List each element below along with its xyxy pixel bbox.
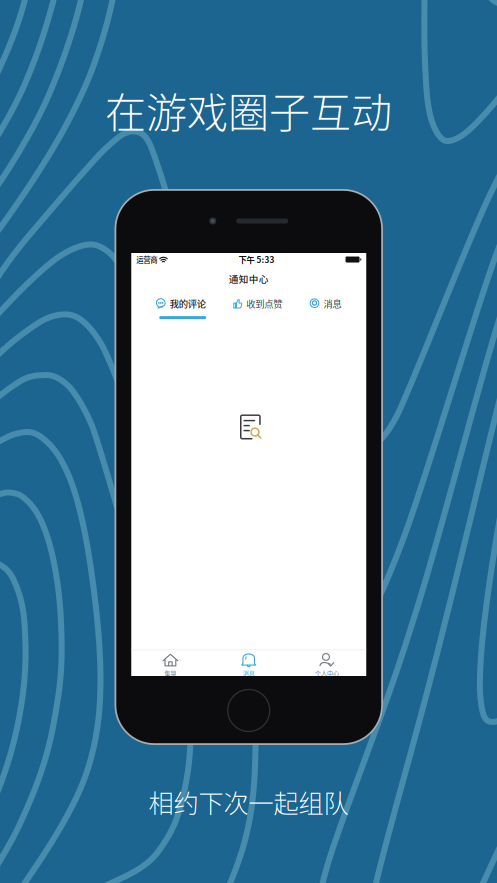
staticText: 消息 [243,668,255,677]
button[interactable]: 收到点赞 [236,297,283,320]
staticText: 收到点赞 [246,297,282,310]
staticText: 在游戏圈子互动 [105,80,392,139]
button[interactable]: 集锦 [131,650,209,676]
button[interactable]: 我的评论 [159,297,206,320]
staticText: 集锦 [164,668,176,677]
button[interactable]: 消息 [312,297,343,320]
staticText: 相约下次一起组队 [148,783,348,820]
staticText: 消息 [323,297,341,310]
button[interactable]: 个人中心 [288,650,366,676]
button[interactable]: 消息 [210,650,288,676]
staticText: 运营商 [136,254,157,265]
staticText: 下午 5:33 [239,253,275,265]
staticText: 通知中心 [229,272,269,285]
staticText: 我的评论 [170,297,206,310]
staticText: 个人中心 [315,668,339,677]
